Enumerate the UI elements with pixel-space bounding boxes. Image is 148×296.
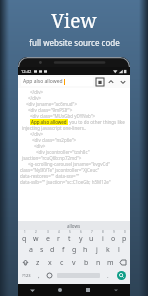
staticText: 8 (102, 230, 104, 234)
staticText: you to do other things like (68, 119, 125, 125)
staticText: <div class="MUxGbd yDYNvb"> (30, 113, 96, 119)
button[interactable]: l (113, 243, 124, 256)
button[interactable]: App also allowed (21, 77, 93, 86)
staticText: e (46, 234, 50, 243)
staticText: </div> (28, 95, 42, 101)
staticText: . (107, 272, 109, 280)
button[interactable]: 2 (30, 230, 42, 243)
button[interactable]: a (25, 243, 36, 256)
button[interactable]: k (102, 243, 113, 256)
button[interactable]: Search (113, 269, 130, 282)
staticText: </div> (30, 89, 44, 95)
staticText: 6 (80, 230, 82, 234)
staticText: f (62, 245, 65, 255)
staticText: i (102, 234, 104, 243)
button[interactable]: Backspace (116, 256, 130, 269)
button[interactable]: Back (18, 284, 46, 296)
button[interactable]: </div> (18, 88, 130, 221)
button[interactable]: 3 (42, 230, 53, 243)
staticText: b (84, 258, 89, 268)
staticText: 4 (58, 230, 60, 234)
staticText: 7 (91, 230, 93, 234)
staticText: 5 (69, 230, 71, 234)
staticText: r (57, 234, 60, 243)
button[interactable]: Shift (18, 256, 32, 269)
button[interactable]: n (92, 256, 104, 269)
staticText: z (36, 258, 40, 268)
staticText: ?123 (22, 273, 31, 278)
button[interactable]: Emoji (44, 269, 55, 282)
staticText: <div> (34, 143, 46, 149)
staticText: App also allowed (23, 78, 63, 85)
staticText: q (22, 234, 27, 243)
staticText: 12:42 (21, 69, 32, 74)
button[interactable]: 6 (75, 230, 86, 243)
staticText: <g-scrolling-carousel jsname="kvgvCd" (28, 161, 111, 167)
staticText: 0 (124, 230, 126, 234)
button[interactable]: z (32, 256, 44, 269)
button[interactable]: 7 (86, 230, 97, 243)
staticText: 2 (35, 230, 37, 234)
staticText: k (106, 245, 110, 255)
staticText: s (40, 245, 44, 255)
button[interactable]: , (34, 269, 44, 282)
button[interactable]: d (47, 243, 58, 256)
staticText: data-restores="" data-ssv="" (20, 173, 80, 179)
button[interactable]: f (58, 243, 69, 256)
button[interactable]: h (80, 243, 91, 256)
button[interactable]: Previous match (107, 78, 115, 86)
button[interactable]: 0 (119, 230, 130, 243)
staticText: m (107, 258, 114, 268)
button[interactable]: b (80, 256, 92, 269)
staticText: </div> (30, 131, 44, 137)
staticText: h (83, 245, 88, 255)
staticText: g (72, 245, 77, 255)
button[interactable]: 5 (64, 230, 75, 243)
staticText: , (38, 272, 40, 280)
button[interactable]: allows (18, 221, 130, 230)
staticText: u (89, 234, 94, 243)
staticText: a (29, 245, 33, 255)
button[interactable]: g (69, 243, 80, 256)
staticText: full website source code (29, 37, 120, 48)
button[interactable]: Search in page (96, 78, 104, 86)
staticText: w (33, 234, 39, 243)
button[interactable]: 1 (18, 230, 30, 243)
button[interactable]: 8 (97, 230, 108, 243)
button[interactable]: Home (46, 284, 74, 296)
staticText: 3 (47, 230, 49, 234)
staticText: 9 (113, 230, 115, 234)
button[interactable]: s (36, 243, 47, 256)
button[interactable]: c (56, 256, 68, 269)
staticText: j (96, 245, 98, 255)
button[interactable]: j (91, 243, 102, 256)
staticText: v (72, 258, 76, 268)
button[interactable]: m (104, 256, 116, 269)
staticText: <div jscontroller="tzsh8c" (36, 149, 90, 155)
staticText: allows (67, 223, 81, 229)
staticText: t (68, 234, 71, 243)
staticText: x (48, 258, 52, 268)
staticText: View (51, 8, 97, 34)
button[interactable]: . (102, 269, 113, 282)
staticText: l (118, 245, 120, 255)
staticText: injecting javascript one-liners.. (22, 125, 87, 131)
staticText: data-sslb="" jsaction="sc:C1oeGb; h5M12e… (20, 179, 111, 185)
staticText: <div class="9mPSIf"> (28, 107, 73, 113)
staticText: n (96, 258, 101, 268)
staticText: App also allowed (31, 119, 67, 125)
button[interactable]: 9 (108, 230, 119, 243)
staticText: class="NyIKVTe" jscontroller="XjCeuc" (20, 167, 100, 173)
button[interactable]: Recents (74, 284, 102, 296)
button[interactable]: x (44, 256, 56, 269)
staticText: <div class="ns2p6e"> (32, 137, 77, 143)
staticText: jsaction="rcuQ6b:np72md"> (22, 155, 82, 161)
button[interactable]: Hide keyboard (102, 284, 130, 296)
button[interactable]: Next match (119, 78, 127, 86)
staticText: <div jsname="ac6mud"> (26, 101, 77, 107)
staticText: p (122, 234, 127, 243)
button[interactable]: ?123 (18, 269, 34, 282)
button[interactable]: 4 (53, 230, 64, 243)
button[interactable]: v (68, 256, 80, 269)
